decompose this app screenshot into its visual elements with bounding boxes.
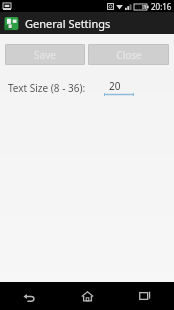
button[interactable]: 20 [104,79,134,96]
staticText: 20 [109,79,121,93]
button[interactable]: Back [7,282,51,310]
button[interactable]: Home [65,282,109,310]
button[interactable]: Recent apps [123,282,167,310]
staticText: 79% [135,4,146,11]
staticText: Text Size (8 - 36): [8,81,86,95]
staticText: General Settings [25,16,111,31]
staticText: Close [116,48,142,62]
button[interactable]: Close [88,44,169,65]
button[interactable]: Save [5,44,85,65]
staticText: Save [34,48,56,62]
staticText: 20:16 [151,1,172,12]
